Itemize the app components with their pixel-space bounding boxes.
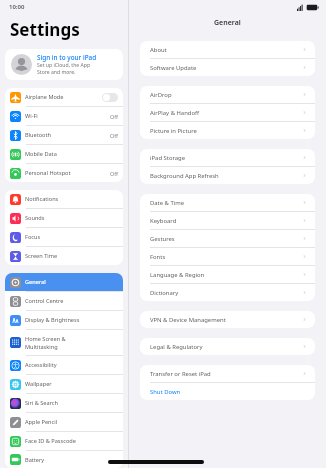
- button[interactable]: About: [140, 41, 315, 58]
- button[interactable]: Wi-Fi: [5, 107, 123, 125]
- staticText: Dictionary: [150, 289, 302, 297]
- button[interactable]: Personal Hotspot: [5, 164, 123, 182]
- button[interactable]: Picture in Picture: [140, 122, 315, 139]
- button[interactable]: iPad Storage: [140, 149, 315, 166]
- staticText: Notifications: [25, 195, 59, 203]
- staticText: 10:00: [9, 3, 25, 11]
- button[interactable]: Sign in to your iPad: [5, 49, 123, 80]
- staticText: Accessibility: [25, 361, 57, 369]
- staticText: VPN & Device Management: [150, 316, 302, 324]
- staticText: Settings: [10, 18, 80, 41]
- button[interactable]: Bluetooth: [5, 126, 123, 144]
- staticText: iPad Storage: [150, 154, 302, 162]
- button[interactable]: Wallpaper: [5, 375, 123, 393]
- staticText: Focus: [25, 233, 41, 241]
- staticText: Wi-Fi: [25, 112, 38, 120]
- button[interactable]: AirPlay & Handoff: [140, 104, 315, 121]
- staticText: Language & Region: [150, 271, 302, 279]
- button[interactable]: Airplane Mode: [5, 88, 123, 106]
- button[interactable]: Gestures: [140, 230, 315, 247]
- button[interactable]: Home Screen &: [5, 330, 123, 355]
- staticText: Off: [110, 132, 118, 139]
- staticText: Sounds: [25, 214, 45, 222]
- button[interactable]: Background App Refresh: [140, 167, 315, 184]
- button[interactable]: Shut Down: [140, 383, 315, 400]
- button[interactable]: Language & Region: [140, 266, 315, 283]
- button[interactable]: Legal & Regulatory: [140, 338, 315, 355]
- button[interactable]: Accessibility: [5, 356, 123, 374]
- staticText: Software Update: [150, 64, 302, 72]
- button[interactable]: Battery: [5, 451, 123, 468]
- staticText: Store and more.: [37, 69, 76, 76]
- staticText: Picture in Picture: [150, 127, 302, 135]
- other: Status icons: [297, 4, 319, 11]
- button[interactable]: Display & Brightness: [5, 311, 123, 329]
- staticText: Home Screen &: [25, 335, 66, 343]
- staticText: Bluetooth: [25, 131, 51, 139]
- button[interactable]: Notifications: [5, 190, 123, 208]
- button[interactable]: VPN & Device Management: [140, 311, 315, 328]
- staticText: Sign in to your iPad: [37, 53, 97, 62]
- staticText: Date & Time: [150, 199, 302, 207]
- staticText: Set up iCloud, the App: [37, 62, 91, 69]
- button[interactable]: Control Centre: [5, 292, 123, 310]
- button[interactable]: Transfer or Reset iPad: [140, 365, 315, 382]
- button[interactable]: Software Update: [140, 59, 315, 76]
- staticText: Face ID & Passcode: [25, 437, 76, 445]
- staticText: Display & Brightness: [25, 316, 80, 324]
- staticText: Battery: [25, 456, 45, 464]
- button[interactable]: Apple Pencil: [5, 413, 123, 431]
- button[interactable]: Mobile Data: [5, 145, 123, 163]
- button[interactable]: Fonts: [140, 248, 315, 265]
- button[interactable]: Face ID & Passcode: [5, 432, 123, 450]
- staticText: Shut Down: [150, 388, 307, 396]
- staticText: Airplane Mode: [25, 93, 64, 101]
- staticText: Keyboard: [150, 217, 302, 225]
- button[interactable]: Focus: [5, 228, 123, 246]
- staticText: Gestures: [150, 235, 302, 243]
- staticText: General: [25, 278, 46, 286]
- staticText: Off: [110, 113, 118, 120]
- staticText: AirDrop: [150, 91, 302, 99]
- staticText: Mobile Data: [25, 150, 57, 158]
- button[interactable]: Screen Time: [5, 247, 123, 265]
- button[interactable]: AirDrop: [140, 86, 315, 103]
- staticText: Personal Hotspot: [25, 169, 71, 177]
- button[interactable]: Sounds: [5, 209, 123, 227]
- staticText: Transfer or Reset iPad: [150, 370, 302, 378]
- button[interactable]: Keyboard: [140, 212, 315, 229]
- staticText: General: [214, 18, 241, 28]
- staticText: Fonts: [150, 253, 302, 261]
- staticText: Off: [110, 170, 118, 177]
- staticText: Multitasking: [25, 343, 58, 351]
- staticText: Siri & Search: [25, 399, 58, 407]
- staticText: Background App Refresh: [150, 172, 302, 180]
- staticText: Apple Pencil: [25, 418, 58, 426]
- button[interactable]: Siri & Search: [5, 394, 123, 412]
- button[interactable]: Date & Time: [140, 194, 315, 211]
- staticText: Wallpaper: [25, 380, 52, 388]
- staticText: AirPlay & Handoff: [150, 109, 302, 117]
- staticText: Legal & Regulatory: [150, 343, 302, 351]
- staticText: Control Centre: [25, 297, 64, 305]
- staticText: Screen Time: [25, 252, 58, 260]
- staticText: About: [150, 46, 302, 54]
- button[interactable]: Dictionary: [140, 284, 315, 301]
- button[interactable]: General: [5, 273, 123, 291]
